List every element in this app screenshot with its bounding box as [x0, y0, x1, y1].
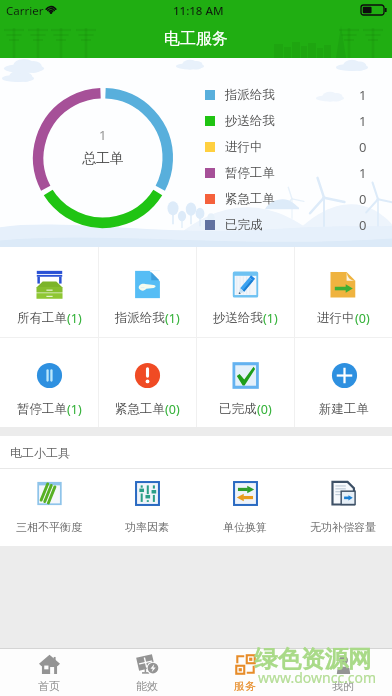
staticText: 功率因素: [125, 520, 169, 534]
staticText: 电工服务: [164, 29, 228, 49]
staticText: 能效: [136, 679, 158, 693]
button[interactable]: 三相不平衡度: [0, 469, 98, 546]
staticText: (0): [165, 401, 180, 418]
staticText: 11:18 AM: [173, 3, 224, 19]
staticText: 进行中: [225, 139, 263, 155]
staticText: 1: [359, 164, 367, 182]
staticText: 0: [359, 138, 367, 156]
button[interactable]: 首页: [0, 649, 98, 696]
staticText: 暂停工单: [225, 165, 275, 181]
staticText: 服务: [234, 679, 256, 693]
staticText: 进行中: [317, 310, 355, 326]
button[interactable]: 新建工单: [295, 338, 392, 427]
button[interactable]: 进行中: [295, 247, 392, 337]
staticText: (1): [67, 401, 82, 418]
staticText: 已完成: [225, 217, 263, 233]
staticText: 电工小工具: [10, 445, 70, 460]
staticText: 1: [359, 112, 367, 130]
button[interactable]: 无功补偿容量: [294, 469, 392, 546]
staticText: (1): [165, 310, 180, 327]
staticText: (1): [263, 310, 278, 327]
staticText: 紧急工单: [115, 401, 165, 417]
button[interactable]: 指派给我: [99, 247, 196, 337]
staticText: 1: [359, 86, 367, 104]
button[interactable]: 抄送给我: [197, 247, 294, 337]
staticText: 指派给我: [115, 310, 165, 326]
staticText: 新建工单: [319, 401, 369, 417]
button[interactable]: 能效: [98, 649, 196, 696]
button[interactable]: 功率因素: [98, 469, 196, 546]
button[interactable]: 单位换算: [196, 469, 294, 546]
staticText: (0): [355, 310, 370, 327]
staticText: 所有工单: [17, 310, 67, 326]
button[interactable]: 紧急工单: [99, 338, 196, 427]
staticText: (0): [257, 401, 272, 418]
staticText: 0: [359, 216, 367, 234]
staticText: www.downcc.com: [258, 668, 377, 687]
button[interactable]: 我的: [294, 649, 392, 696]
staticText: 三相不平衡度: [16, 520, 82, 534]
staticText: 无功补偿容量: [310, 520, 376, 534]
staticText: (1): [67, 310, 82, 327]
staticText: 我的: [332, 679, 354, 693]
staticText: 绿色资源网: [254, 644, 372, 674]
staticText: 首页: [38, 679, 60, 693]
button[interactable]: 服务: [196, 649, 294, 696]
staticText: 已完成: [219, 401, 257, 417]
button[interactable]: 暂停工单: [0, 338, 98, 427]
staticText: 0: [359, 190, 367, 208]
staticText: 抄送给我: [213, 310, 263, 326]
staticText: 1: [99, 126, 107, 144]
staticText: 暂停工单: [17, 401, 67, 417]
staticText: 紧急工单: [225, 191, 275, 207]
staticText: Carrier: [6, 3, 44, 19]
staticText: 指派给我: [225, 87, 275, 103]
staticText: 抄送给我: [225, 113, 275, 129]
button[interactable]: 已完成: [197, 338, 294, 427]
staticText: 单位换算: [223, 520, 267, 534]
staticText: 总工单: [82, 150, 124, 168]
button[interactable]: 所有工单: [0, 247, 98, 337]
